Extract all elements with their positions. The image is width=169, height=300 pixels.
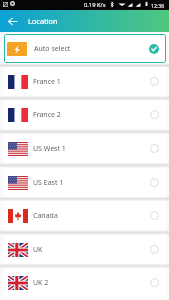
button[interactable]: UK 2 xyxy=(4,268,166,297)
button[interactable]: US West 1 xyxy=(4,134,166,163)
button[interactable]: Back xyxy=(4,13,20,29)
staticText: France 1 xyxy=(33,77,61,87)
staticText: 0.19 K/s xyxy=(84,1,106,9)
button[interactable]: Auto select xyxy=(4,34,166,63)
staticText: US East 1 xyxy=(33,178,64,188)
button[interactable]: US East 1 xyxy=(4,168,166,197)
button[interactable]: France 1 xyxy=(4,67,166,96)
staticText: Location xyxy=(28,16,58,26)
button[interactable]: UK xyxy=(4,235,166,264)
staticText: UK 2 xyxy=(33,278,49,288)
button[interactable]: Canada xyxy=(4,201,166,230)
button[interactable]: France 2 xyxy=(4,100,166,129)
staticText: 12:36 xyxy=(151,2,165,9)
staticText: France 2 xyxy=(33,110,61,120)
staticText: UK xyxy=(33,245,43,255)
staticText: Canada xyxy=(33,211,58,221)
staticText: US West 1 xyxy=(33,144,66,154)
staticText: Auto select xyxy=(34,44,71,54)
